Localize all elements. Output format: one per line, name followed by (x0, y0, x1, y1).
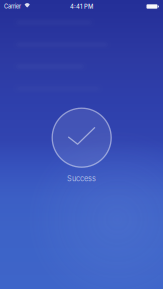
staticText: Carrier (4, 3, 21, 10)
staticText: Success (67, 174, 96, 183)
staticText: 4:41 PM (70, 3, 93, 10)
